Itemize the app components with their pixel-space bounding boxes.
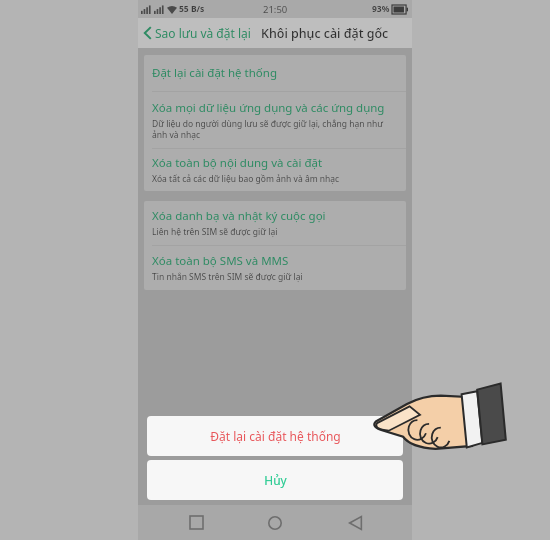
staticText: Xóa danh bạ và nhật ký cuộc gọi — [152, 208, 326, 224]
staticText: Xóa toàn bộ nội dung và cài đặt — [152, 155, 323, 171]
button[interactable]: Home — [253, 505, 297, 540]
staticText: Liên hệ trên SIM sẽ được giữ lại — [152, 226, 278, 238]
staticText: Dữ liệu do người dùng lưu sẽ được giữ lạ… — [152, 118, 383, 140]
button[interactable]: Xóa toàn bộ SMS và MMS — [144, 246, 406, 290]
button[interactable]: Đặt lại cài đặt hệ thống — [147, 416, 403, 456]
staticText: Đặt lại cài đặt hệ thống — [210, 428, 341, 444]
staticText: Xóa toàn bộ SMS và MMS — [152, 253, 289, 269]
button[interactable]: Xóa mọi dữ liệu ứng dụng và các ứng dụng… — [144, 92, 406, 148]
staticText: 93% — [372, 3, 390, 15]
staticText: 55 B/s — [179, 3, 205, 15]
staticText: Xóa tất cả các dữ liệu bao gồm ảnh và âm… — [152, 173, 340, 185]
staticText: Xóa mọi dữ liệu ứng dụng và các ứng dụng… — [152, 100, 398, 116]
button[interactable]: Xóa danh bạ và nhật ký cuộc gọi — [144, 201, 406, 245]
staticText: Đặt lại cài đặt hệ thống — [152, 65, 277, 81]
button[interactable]: Recent apps — [174, 505, 218, 540]
staticText: Tin nhắn SMS trên SIM sẽ được giữ lại — [152, 271, 303, 283]
button[interactable]: Xóa toàn bộ nội dung và cài đặt — [144, 149, 406, 191]
staticText: 21:50 — [263, 3, 288, 16]
button[interactable]: Hủy — [147, 460, 403, 500]
button[interactable]: Back — [333, 505, 377, 540]
button[interactable]: Sao lưu và đặt lại — [138, 21, 255, 45]
staticText: Khôi phục cài đặt gốc — [261, 25, 389, 42]
staticText: Sao lưu và đặt lại — [155, 25, 251, 41]
staticText: Hủy — [264, 472, 287, 488]
button[interactable]: Đặt lại cài đặt hệ thống — [144, 55, 406, 91]
